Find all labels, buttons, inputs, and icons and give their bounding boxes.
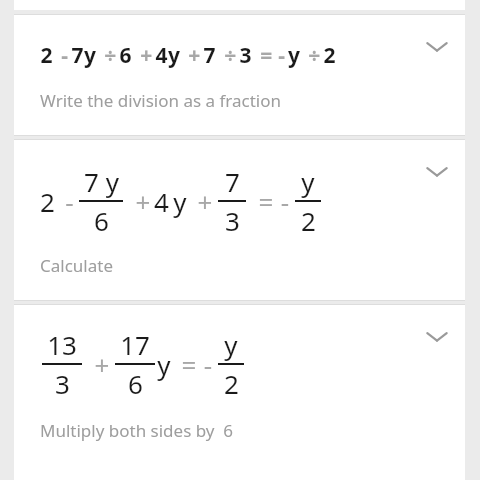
staticText: + [180,41,203,70]
staticText: - [53,41,71,70]
staticText: = [171,347,200,382]
staticText: 13 [47,327,77,362]
staticText: 7 y [84,164,119,199]
staticText: 6 [119,41,132,70]
staticText: - [55,184,77,219]
staticText: 4 [154,184,169,219]
staticText: - [275,41,288,70]
staticText: 3 [225,203,240,238]
staticText: 7 [71,41,84,70]
staticText: y [168,41,180,70]
staticText: 6 [94,203,109,238]
staticText: Calculate [40,254,113,277]
staticText: y [84,41,96,70]
staticText: = [248,184,277,219]
button[interactable]: Expand step [417,317,457,357]
staticText: 4 [155,41,168,70]
button[interactable]: Expand step [417,27,457,67]
staticText: 2 [323,41,336,70]
staticText: ÷ [300,41,323,70]
staticText: 17 [120,327,150,362]
staticText: y [157,347,171,382]
staticText: Write the division as a fraction [40,89,282,112]
staticText: ÷ [96,41,119,70]
staticText: 3 [55,366,70,401]
staticText: 2 [301,203,316,238]
staticText: - [200,347,216,382]
staticText: 6 [128,366,143,401]
staticText: + [84,347,113,382]
staticText: y [224,327,238,362]
staticText: y [301,164,315,199]
staticText: + [132,41,155,70]
staticText: + [187,184,216,219]
button[interactable]: 2 [14,15,465,135]
staticText: 2 [224,366,239,401]
staticText: 7 [225,164,240,199]
button[interactable]: 13 [14,305,465,480]
staticText: 7 [203,41,216,70]
button[interactable]: Expand step [417,152,457,192]
staticText: ÷ [216,41,239,70]
staticText: 3 [239,41,252,70]
staticText: 2 [40,184,55,219]
staticText: y [288,41,300,70]
staticText: Multiply both sides by 6 [40,419,234,442]
staticText: y [173,184,187,219]
button[interactable]: 2 [14,140,465,300]
staticText: 2 [40,41,53,70]
staticText: + [125,184,154,219]
staticText: - [277,184,293,219]
staticText: = [252,41,275,70]
